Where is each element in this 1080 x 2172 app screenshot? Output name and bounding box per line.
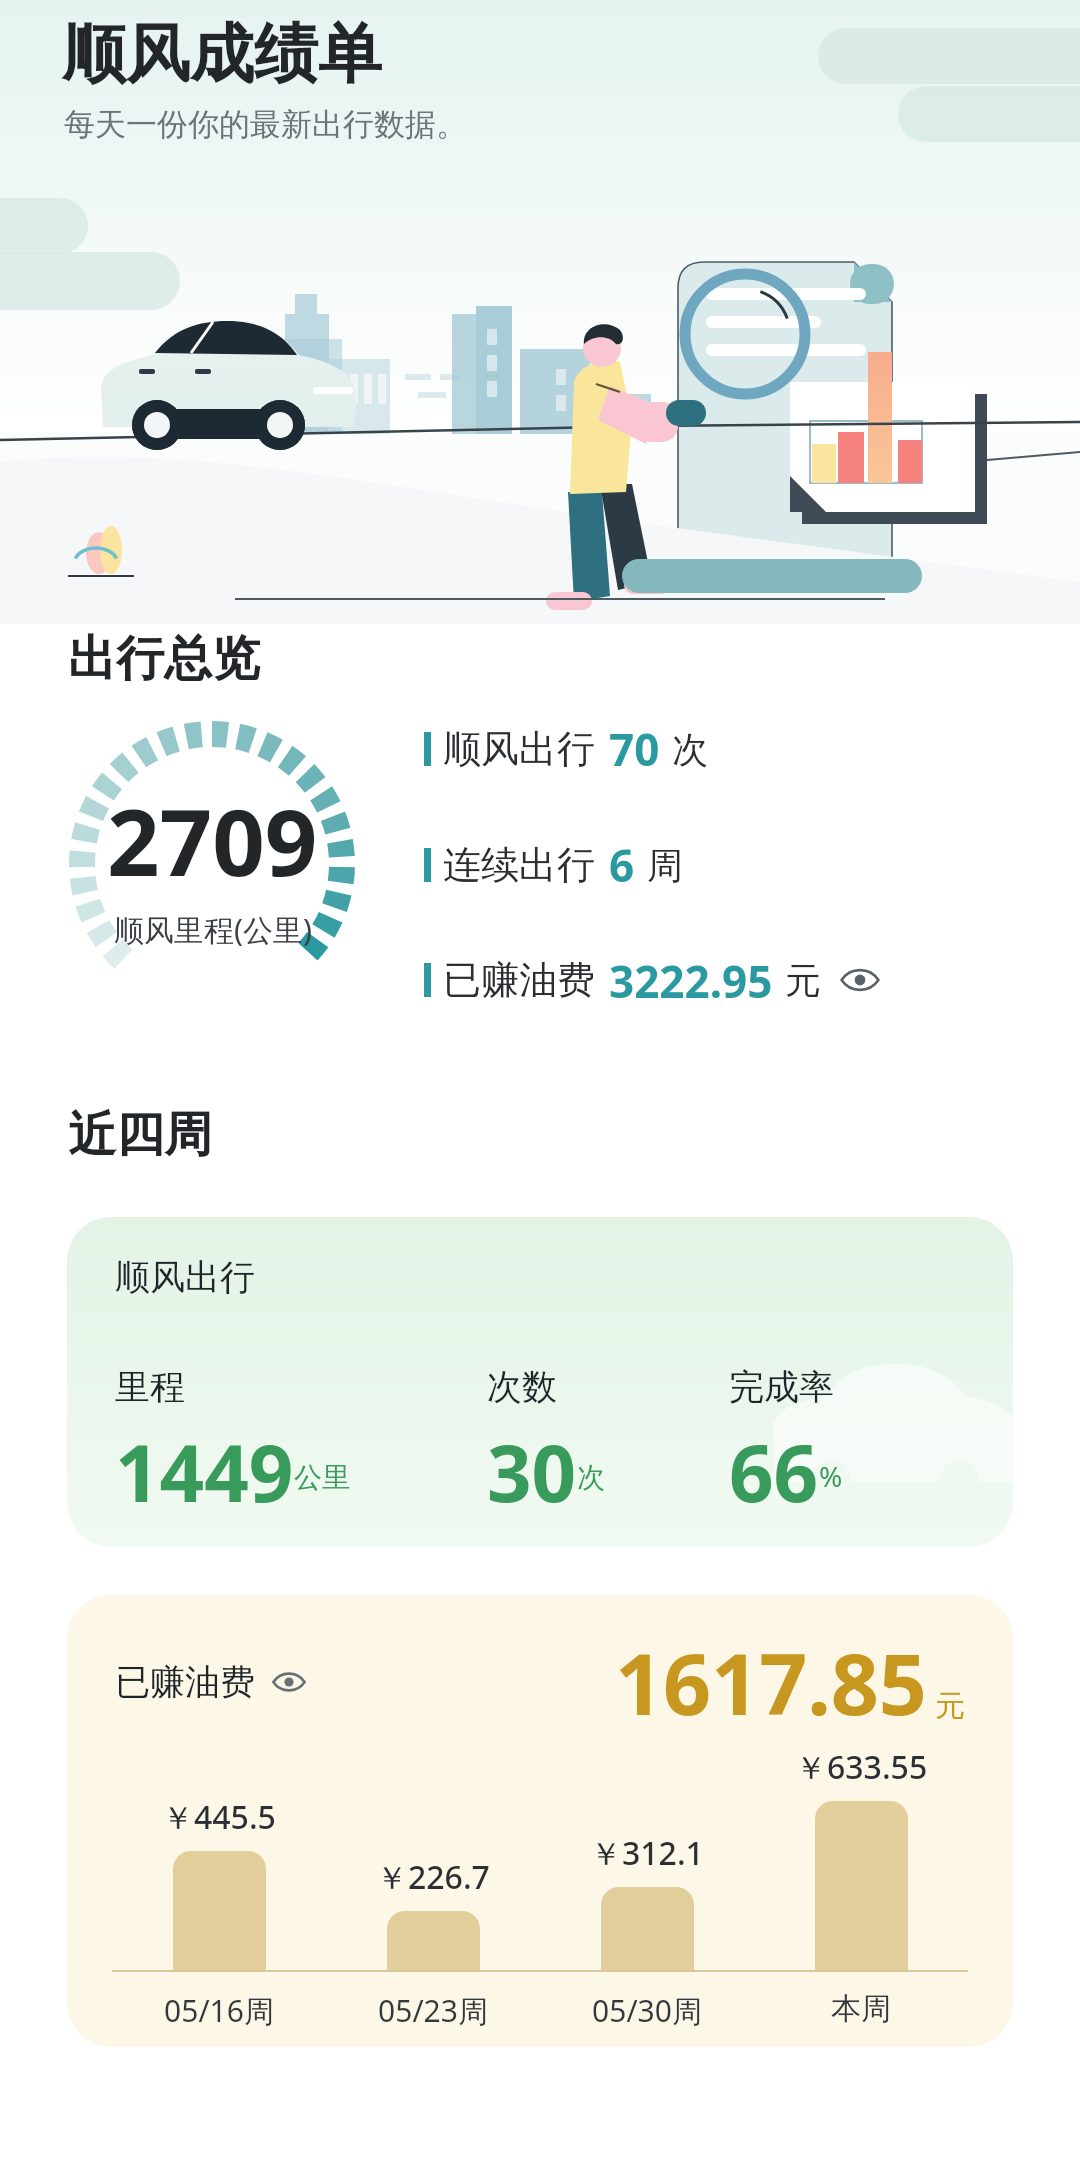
staticText: 次数 (487, 1365, 557, 1409)
staticText: 出行总览 (68, 629, 260, 689)
staticText: 里程 (115, 1365, 185, 1409)
staticText: 05/16周 (112, 1990, 326, 2031)
staticText: 元 (935, 1687, 965, 1725)
staticText: 6 (609, 835, 635, 895)
button[interactable]: Toggle amount visibility (269, 1662, 309, 1702)
staticText: 05/30周 (540, 1990, 754, 2031)
staticText: ￥445.5 (162, 1795, 276, 1839)
staticText: 连续出行 (443, 841, 595, 889)
staticText: 30 (487, 1419, 577, 1525)
staticText: 次 (577, 1460, 605, 1495)
staticText: 元 (785, 958, 821, 1003)
staticText: 3222.95 (609, 951, 773, 1009)
staticText: ￥312.1 (590, 1831, 704, 1875)
button[interactable]: 顺风出行 (67, 1217, 1013, 1547)
staticText: 本周 (754, 1990, 968, 2028)
staticText: 次 (672, 727, 708, 772)
staticText: 顺风出行 (443, 725, 595, 773)
staticText: 1449 (115, 1419, 294, 1525)
staticText: 70 (609, 719, 660, 779)
staticText: 1617.85 (615, 1625, 927, 1739)
staticText: 05/23周 (326, 1990, 540, 2031)
staticText: 66 (729, 1419, 819, 1525)
staticText: 顺风里程(公里) (114, 909, 312, 950)
button[interactable]: 已赚油费 (67, 1595, 1013, 2047)
staticText: 周 (647, 843, 683, 888)
staticText: % (819, 1457, 843, 1495)
staticText: 每天一份你的最新出行数据。 (64, 105, 467, 144)
staticText: 已赚油费 (443, 956, 595, 1004)
staticText: 完成率 (729, 1365, 834, 1409)
button[interactable]: Toggle amount visibility (837, 957, 883, 1003)
staticText: 已赚油费 (115, 1660, 255, 1704)
staticText: ￥226.7 (376, 1855, 490, 1899)
staticText: 公里 (294, 1460, 350, 1495)
staticText: 顺风成绩单 (62, 14, 382, 95)
staticText: 近四周 (68, 1105, 212, 1165)
staticText: 2709 (107, 778, 318, 903)
staticText: ￥633.55 (795, 1745, 928, 1789)
staticText: 顺风出行 (115, 1255, 255, 1299)
